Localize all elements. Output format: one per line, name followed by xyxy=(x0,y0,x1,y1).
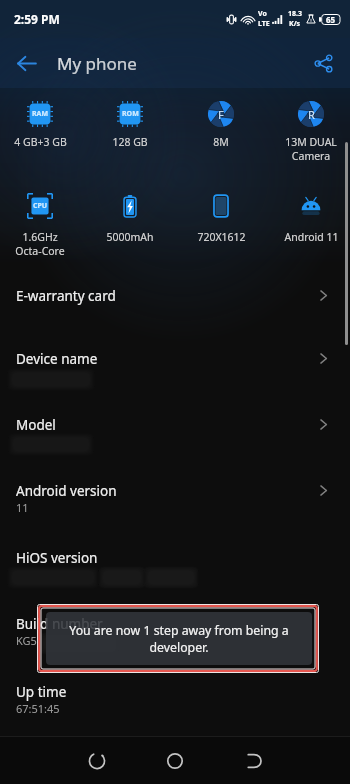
staticText: Device name xyxy=(16,350,98,368)
staticText: Up time xyxy=(16,683,67,701)
button[interactable]: HiOS version xyxy=(0,536,350,584)
button[interactable]: Recents xyxy=(73,737,121,784)
staticText: RAM xyxy=(32,109,49,119)
staticText: You are now 1 step away from being a dev… xyxy=(56,622,302,656)
staticText: Vo xyxy=(258,9,267,19)
staticText: 18.3 xyxy=(288,9,302,19)
button[interactable]: Model xyxy=(0,403,350,451)
staticText: ROM xyxy=(122,109,139,119)
button[interactable]: RAM xyxy=(0,88,84,180)
button[interactable]: Share xyxy=(303,43,343,83)
staticText: My phone xyxy=(57,52,137,75)
staticText: CPU xyxy=(33,201,48,211)
staticText: 5000mAh xyxy=(106,230,154,244)
staticText: 67:51:45 xyxy=(16,701,60,716)
staticText: Android version xyxy=(16,482,117,500)
button[interactable]: Home xyxy=(151,737,199,784)
staticText: 8M xyxy=(213,135,229,149)
button[interactable]: Back xyxy=(6,43,46,83)
button[interactable]: Android version xyxy=(0,469,350,517)
button[interactable]: R xyxy=(267,88,350,180)
staticText: R xyxy=(308,107,315,122)
button[interactable]: Device name xyxy=(0,337,350,385)
staticText: 1.6GHz Octa-Core xyxy=(15,230,65,258)
button[interactable]: CPU xyxy=(0,180,84,262)
button[interactable]: Up time xyxy=(0,670,350,718)
staticText: 4 GB+3 GB xyxy=(14,135,67,149)
button[interactable]: F xyxy=(177,88,265,180)
staticText: 128 GB xyxy=(112,135,148,149)
staticText: 13M DUAL Camera xyxy=(285,135,337,163)
button[interactable]: Build number xyxy=(0,602,350,650)
staticText: Android 11 xyxy=(284,230,339,244)
staticText: 11 xyxy=(16,500,29,515)
staticText: Build number xyxy=(16,615,103,633)
button[interactable]: E-warranty card xyxy=(0,274,350,318)
button[interactable]: Android 11 xyxy=(267,180,350,262)
button[interactable]: Back xyxy=(230,737,278,784)
staticText: 2:59 PM xyxy=(14,11,60,27)
button[interactable]: 5000mAh xyxy=(86,180,174,262)
staticText: 720X1612 xyxy=(197,230,246,244)
button[interactable]: 720X1612 xyxy=(177,180,265,262)
staticText: E-warranty card xyxy=(16,287,116,305)
staticText: 65 xyxy=(326,14,336,25)
staticText: Model xyxy=(16,416,56,434)
staticText: F xyxy=(218,107,224,122)
button[interactable]: ROM xyxy=(86,88,174,180)
staticText: LTE xyxy=(258,19,270,29)
staticText: KG5 xyxy=(16,633,37,648)
staticText: K/s xyxy=(289,19,301,29)
staticText: HiOS version xyxy=(16,549,98,567)
